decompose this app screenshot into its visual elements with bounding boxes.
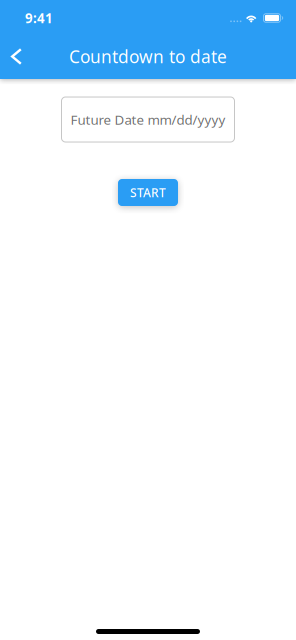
- button[interactable]: Back: [0, 36, 33, 77]
- staticText: START: [130, 184, 166, 200]
- staticText: Future Date mm/dd/yyyy: [70, 111, 225, 128]
- button[interactable]: START: [118, 179, 178, 206]
- staticText: 9:41: [25, 9, 53, 27]
- staticText: Countdown to date: [69, 45, 227, 68]
